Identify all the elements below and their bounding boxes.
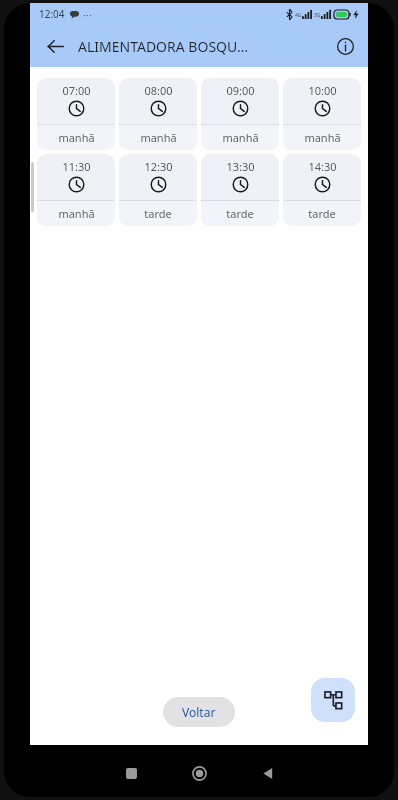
staticText: manhã xyxy=(222,130,259,145)
staticText: 08:00 xyxy=(144,83,173,98)
button[interactable]: 13:30 xyxy=(201,154,279,226)
staticText: ALIMENTADORA BOSQU… xyxy=(78,37,249,56)
button[interactable]: 09:00 xyxy=(201,78,279,150)
staticText: 12:04 xyxy=(39,7,65,21)
staticText: 11:30 xyxy=(62,159,91,174)
button[interactable]: 10:00 xyxy=(283,78,361,150)
button[interactable]: Recent apps xyxy=(112,754,150,792)
button[interactable]: 12:30 xyxy=(119,154,197,226)
staticText: tarde xyxy=(308,206,336,221)
staticText: 07:00 xyxy=(62,83,91,98)
staticText: manhã xyxy=(304,130,341,145)
staticText: manhã xyxy=(58,130,95,145)
button[interactable]: 07:00 xyxy=(37,78,115,150)
button[interactable]: Back xyxy=(38,29,72,63)
staticText: manhã xyxy=(140,130,177,145)
button[interactable]: Information xyxy=(330,31,360,61)
button[interactable]: Back xyxy=(248,754,286,792)
button[interactable]: 08:00 xyxy=(119,78,197,150)
staticText: manhã xyxy=(58,206,95,221)
button[interactable]: Hierarchy xyxy=(311,678,355,722)
staticText: 14:30 xyxy=(308,159,337,174)
staticText: 4G xyxy=(295,12,302,19)
staticText: tarde xyxy=(226,206,254,221)
staticText: Voltar xyxy=(182,704,216,720)
button[interactable]: 11:30 xyxy=(37,154,115,226)
staticText: 12:30 xyxy=(144,159,173,174)
staticText: 3G xyxy=(314,12,321,19)
staticText: tarde xyxy=(144,206,172,221)
staticText: 09:00 xyxy=(226,83,255,98)
button[interactable]: 14:30 xyxy=(283,154,361,226)
staticText: 10:00 xyxy=(308,83,337,98)
staticText: 13:30 xyxy=(226,159,255,174)
button[interactable]: Voltar xyxy=(163,697,235,727)
button[interactable]: Home xyxy=(180,754,218,792)
